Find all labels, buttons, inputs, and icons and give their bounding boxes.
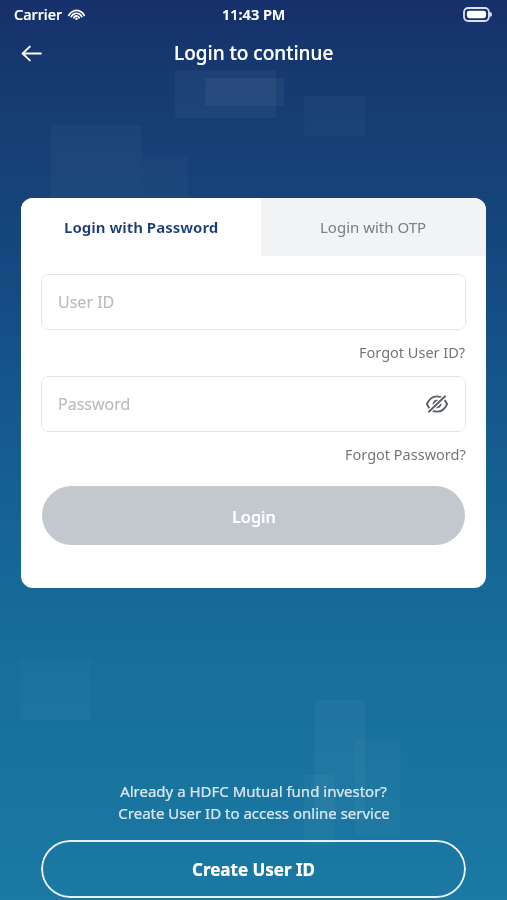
button[interactable]: Back (10, 32, 52, 74)
staticText: Forgot Password? (345, 444, 466, 464)
staticText: Login to continue (174, 40, 334, 66)
staticText: Already a HDFC Mutual fund investor? (120, 781, 387, 801)
staticText: Forgot User ID? (359, 342, 466, 362)
button[interactable]: User ID (41, 274, 466, 330)
staticText: Create User ID (192, 858, 316, 881)
staticText: User ID (58, 291, 115, 313)
button[interactable]: Show password (418, 385, 456, 423)
button[interactable]: Create User ID (41, 840, 466, 898)
button[interactable]: Login with Password (21, 198, 261, 256)
staticText: Login with Password (64, 217, 219, 237)
staticText: Login with OTP (320, 217, 427, 237)
staticText: Password (58, 393, 131, 415)
button[interactable]: Forgot Password? (345, 442, 466, 466)
button[interactable]: Login with OTP (261, 198, 486, 256)
staticText: 11:43 PM (222, 4, 286, 24)
button[interactable]: Login (42, 486, 465, 545)
button[interactable]: Forgot User ID? (359, 340, 466, 364)
button[interactable]: Password (41, 376, 466, 432)
staticText: Create User ID to access online service (118, 803, 390, 823)
staticText: Login (232, 505, 276, 527)
staticText: Carrier (14, 4, 63, 24)
